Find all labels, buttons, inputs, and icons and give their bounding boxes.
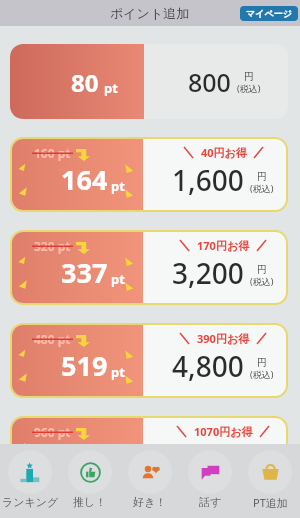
staticText: 800 <box>188 65 231 99</box>
staticText: 4,800 <box>172 347 244 385</box>
button[interactable]: 話す <box>180 444 240 518</box>
staticText: ポイント追加 <box>110 5 190 21</box>
staticText: 1039 <box>46 440 108 477</box>
staticText: 170円お得 <box>197 238 250 253</box>
staticText: 3,200 <box>172 254 244 292</box>
staticText: 円 <box>244 70 254 83</box>
staticText: 1070円お得 <box>194 424 253 439</box>
staticText: 337 <box>61 254 108 291</box>
button[interactable]: PT追加 <box>240 444 300 518</box>
button[interactable]: 好き <box>120 444 180 518</box>
button[interactable]: ランキング <box>0 444 60 518</box>
button[interactable]: 960 pt <box>12 418 286 489</box>
staticText: 519 <box>61 347 108 384</box>
button[interactable]: 80 <box>10 44 288 119</box>
staticText: pt <box>111 270 125 288</box>
staticText: PT追加 <box>253 495 288 510</box>
staticText: 80 <box>71 66 99 99</box>
staticText: (税込) <box>250 182 274 194</box>
staticText: ランキング <box>2 495 59 509</box>
staticText: pt <box>111 177 125 195</box>
staticText: 1,600 <box>172 161 244 199</box>
staticText: (税込) <box>237 82 261 94</box>
staticText: 480 pt <box>34 331 71 347</box>
staticText: 話す <box>199 495 222 509</box>
staticText: 推し！ <box>73 495 107 509</box>
other: 好き <box>140 462 161 483</box>
button[interactable]: マイページ <box>240 6 298 21</box>
staticText: (税込) <box>250 275 274 287</box>
button[interactable]: 推し <box>60 444 120 518</box>
staticText: 好き！ <box>133 495 167 509</box>
staticText: 円 <box>257 263 267 276</box>
other: 話す <box>200 462 221 483</box>
staticText: 40円お得 <box>201 145 247 160</box>
staticText: 160 pt <box>34 145 71 161</box>
staticText: 9,600 <box>172 440 244 478</box>
staticText: 円 <box>257 170 267 183</box>
staticText: pt <box>111 363 125 381</box>
staticText: 320 pt <box>34 238 71 254</box>
staticText: pt <box>104 79 118 97</box>
staticText: (税込) <box>250 461 274 473</box>
button[interactable]: 480 pt <box>12 325 286 396</box>
staticText: 円 <box>257 356 267 369</box>
staticText: 960 pt <box>34 424 71 440</box>
other: PT追加 <box>260 462 281 483</box>
staticText: マイページ <box>246 8 292 19</box>
button[interactable]: 160 pt <box>12 139 286 210</box>
staticText: (税込) <box>250 368 274 380</box>
button[interactable]: 320 pt <box>12 232 286 303</box>
other: 推し <box>80 462 101 483</box>
staticText: 164 <box>61 161 108 198</box>
other: ランキング <box>20 462 41 483</box>
staticText: 390円お得 <box>197 331 250 346</box>
